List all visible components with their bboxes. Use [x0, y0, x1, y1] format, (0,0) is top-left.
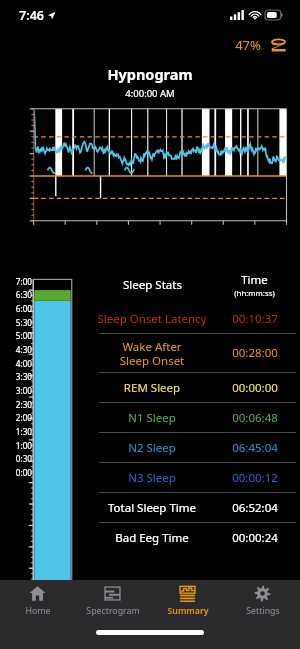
staticText: REM Sleep	[95, 380, 209, 396]
button[interactable]: N3 Sleep	[95, 463, 300, 492]
staticText: N3 Sleep	[95, 470, 209, 486]
staticText: 00:10:37	[232, 311, 278, 327]
staticText: (hh:mm:ss)	[234, 288, 275, 299]
staticText: Bad Eeg Time	[95, 530, 209, 546]
staticText: Settings	[246, 605, 280, 617]
staticText: 5:30	[0, 317, 32, 328]
staticText: 1:30	[0, 426, 32, 437]
staticText: Hypnogram	[0, 64, 300, 84]
staticText: 06:45:04	[232, 440, 278, 456]
button[interactable]: Summary	[150, 580, 225, 626]
staticText: 7:46	[19, 7, 44, 24]
button[interactable]: Wake After Sleep Onset	[95, 334, 300, 372]
button[interactable]: Spectrogram	[75, 580, 150, 626]
button[interactable]: Sleep Onset Latency	[95, 304, 300, 333]
staticText: 06:52:04	[232, 500, 278, 516]
staticText: N2 Sleep	[95, 440, 209, 456]
staticText: Sleep Onset Latency	[95, 311, 209, 327]
staticText: 47%	[235, 36, 261, 54]
staticText: Time	[241, 272, 268, 288]
button[interactable]: Home	[0, 580, 75, 626]
staticText: Spectrogram	[86, 605, 140, 617]
button[interactable]: Settings	[225, 580, 300, 626]
button[interactable]: REM Sleep	[95, 373, 300, 402]
staticText: 6:30	[0, 289, 32, 300]
staticText: 0:30	[0, 453, 32, 464]
staticText: 6:00	[0, 303, 32, 314]
staticText: 1:00	[0, 440, 32, 451]
staticText: 4:00:00 AM	[0, 87, 300, 100]
staticText: N1 Sleep	[95, 410, 209, 426]
staticText: 00:00:24	[232, 530, 278, 546]
staticText: Total Sleep Time	[95, 500, 209, 516]
staticText: Home	[25, 605, 51, 617]
staticText: 00:00:12	[232, 470, 278, 486]
staticText: Sleep Stats	[123, 277, 182, 293]
staticText: 00:06:48	[232, 410, 278, 426]
staticText: 7:00	[0, 276, 32, 287]
staticText: 4:00	[0, 358, 32, 369]
button[interactable]: N1 Sleep	[95, 403, 300, 432]
staticText: 00:28:00	[232, 345, 278, 361]
staticText: 3:30	[0, 371, 32, 382]
staticText: 2:00	[0, 412, 32, 423]
staticText: 0:00	[0, 467, 32, 478]
staticText: 4:30	[0, 344, 32, 355]
staticText: 2:30	[0, 399, 32, 410]
staticText: 5:00	[0, 330, 32, 341]
button[interactable]: Total Sleep Time	[95, 493, 300, 522]
staticText: 3:00	[0, 385, 32, 396]
staticText: 00:00:00	[232, 380, 278, 396]
button[interactable]: N2 Sleep	[95, 433, 300, 462]
staticText: Summary	[167, 605, 209, 617]
button[interactable]: Bad Eeg Time	[95, 523, 300, 552]
staticText: Wake After Sleep Onset	[95, 339, 209, 368]
